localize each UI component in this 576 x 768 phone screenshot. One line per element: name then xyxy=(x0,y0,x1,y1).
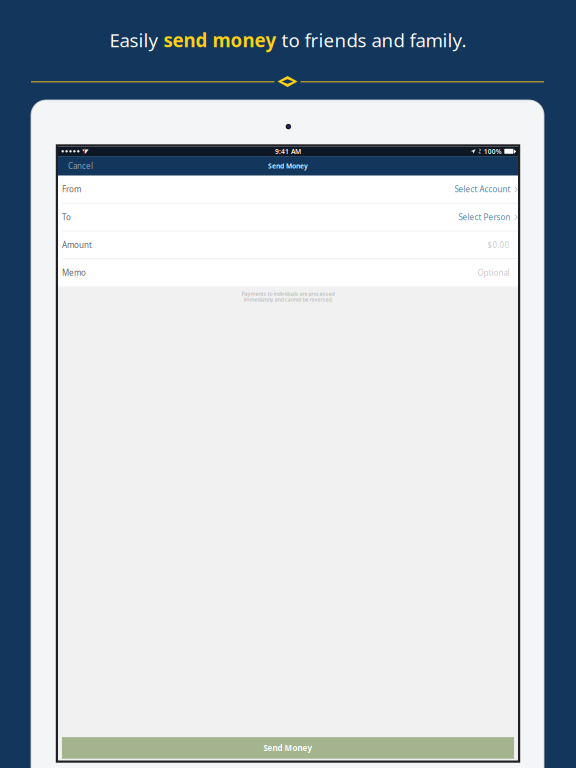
button[interactable]: Send Money xyxy=(62,737,514,759)
button[interactable]: Cancel xyxy=(64,158,97,174)
staticText: to friends and family. xyxy=(276,28,466,52)
staticText: send money xyxy=(163,28,276,52)
staticText: 9:41 AM xyxy=(275,147,301,156)
button[interactable]: From xyxy=(58,176,518,203)
staticText: Memo xyxy=(62,267,86,278)
staticText: Select Account xyxy=(455,184,511,194)
staticText: Send Money xyxy=(263,743,312,753)
staticText: 100% xyxy=(484,147,502,156)
staticText: Select Person xyxy=(459,212,511,222)
button[interactable]: To xyxy=(58,203,518,231)
staticText: Payments to individuals are processed xyxy=(241,290,334,297)
staticText: immediately and cannot be reversed. xyxy=(243,296,332,303)
staticText: From xyxy=(62,184,81,194)
staticText: $0.00 xyxy=(487,239,509,250)
button[interactable]: Memo xyxy=(58,259,518,286)
staticText: To xyxy=(62,212,71,222)
staticText: Cancel xyxy=(68,161,93,171)
staticText: Send Money xyxy=(268,161,308,170)
staticText: Optional xyxy=(477,267,509,278)
staticText: Amount xyxy=(62,239,92,250)
button[interactable]: Amount xyxy=(58,231,518,258)
staticText: Easily xyxy=(109,28,163,52)
